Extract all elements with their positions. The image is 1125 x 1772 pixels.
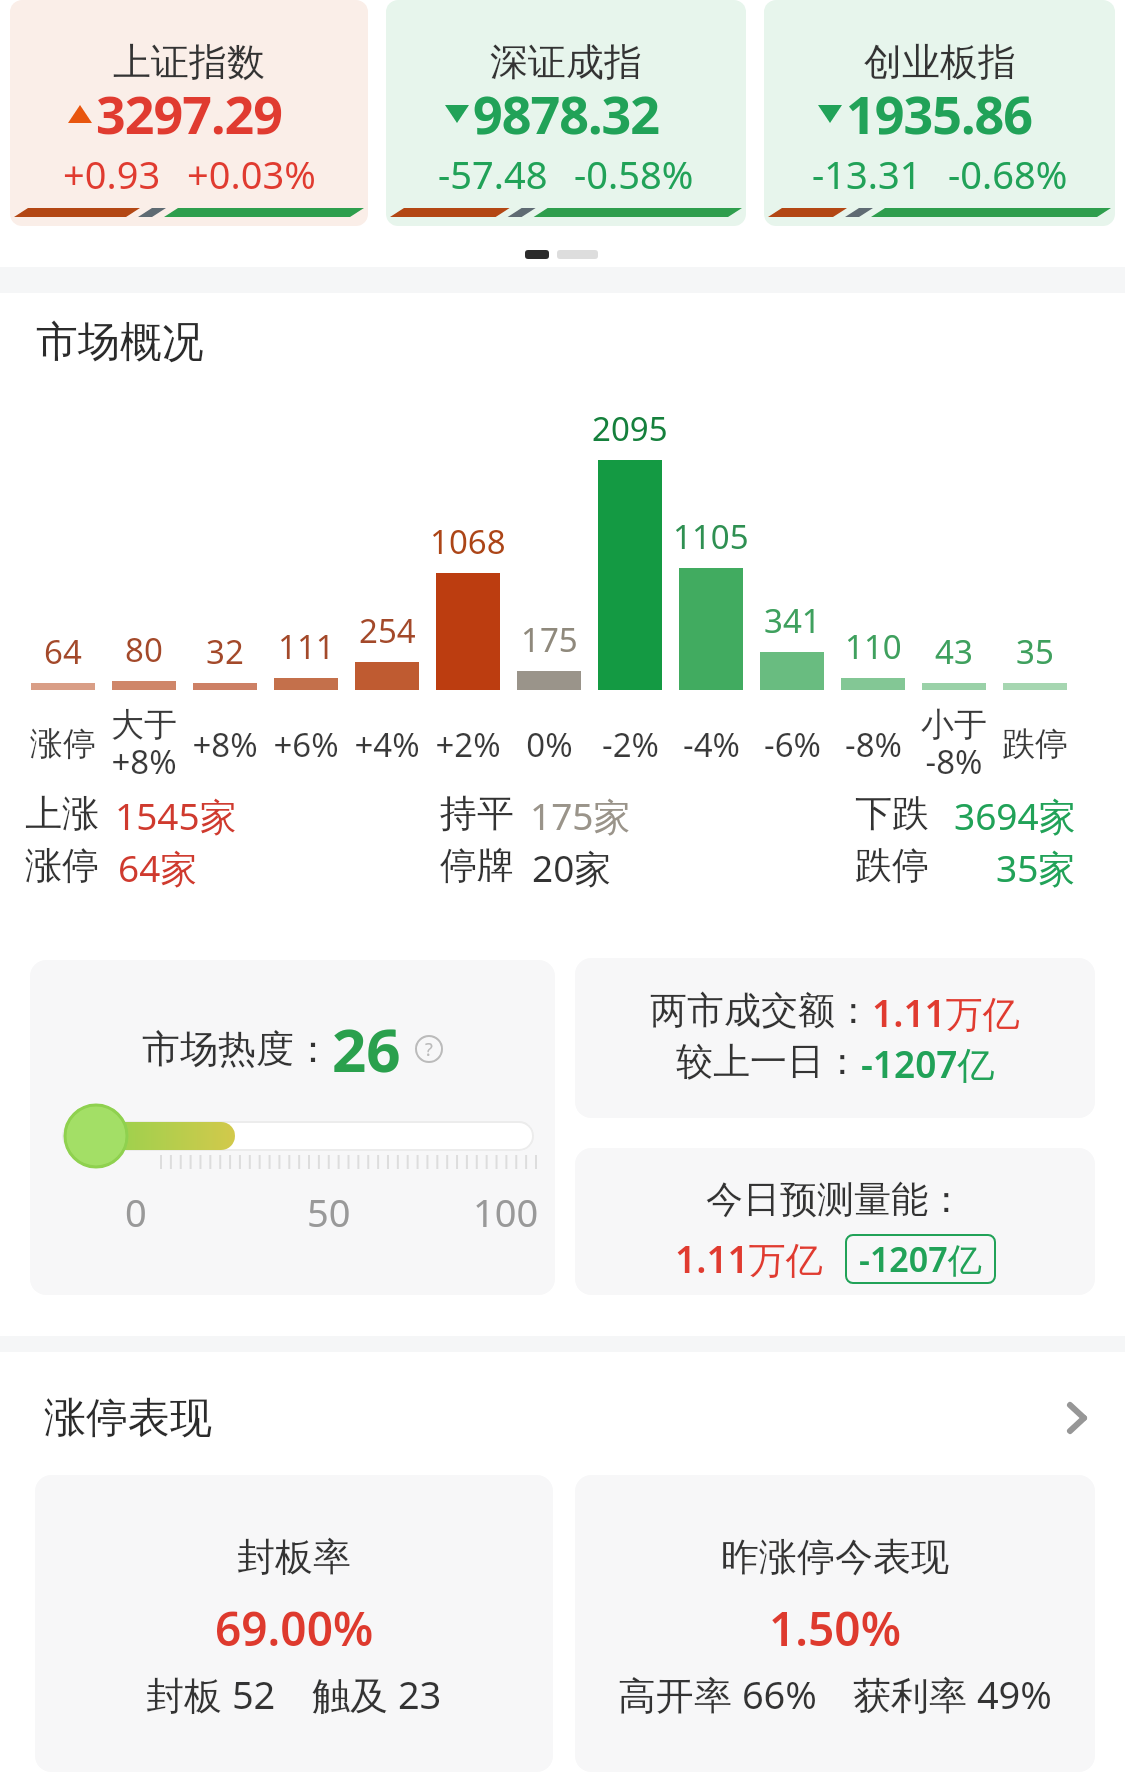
staticText: 1545家	[115, 790, 237, 841]
staticText: 触及 23	[312, 1668, 442, 1720]
staticText: -13.31	[812, 148, 922, 200]
staticText: 跌停	[1002, 723, 1068, 765]
staticText: 9878.32	[473, 78, 660, 149]
staticText: 停牌	[440, 842, 514, 889]
staticText: +0.93	[63, 148, 161, 200]
staticText: 341	[764, 598, 821, 643]
staticText: 1.11万亿	[872, 987, 1020, 1038]
staticText: 254	[359, 608, 416, 653]
staticText: 64家	[118, 842, 198, 893]
staticText: -1207亿	[861, 1038, 995, 1089]
staticText: 64	[44, 629, 82, 674]
staticText: 80	[125, 627, 163, 672]
staticText: 今日预测量能：	[706, 1176, 965, 1223]
staticText: 0%	[526, 722, 573, 767]
staticText: 涨停	[25, 842, 99, 889]
staticText: 大于 +8%	[111, 704, 177, 784]
staticText: -2%	[602, 722, 659, 767]
staticText: 1105	[673, 514, 749, 559]
staticText: -57.48	[438, 148, 548, 200]
staticText: 较上一日：	[676, 1038, 861, 1085]
staticText: 市场概况	[36, 316, 204, 369]
button[interactable]: 今日预测量能：	[575, 1148, 1095, 1295]
staticText: -6%	[764, 722, 821, 767]
staticText: -8%	[845, 722, 902, 767]
staticText: 20家	[532, 842, 612, 893]
staticText: 2095	[592, 406, 668, 451]
button[interactable]: 两市成交额：	[575, 958, 1095, 1118]
staticText: 持平	[440, 790, 514, 837]
button[interactable]: 上证指数	[10, 0, 368, 226]
staticText: 下跌	[855, 790, 929, 837]
staticText: 0	[125, 1186, 147, 1238]
staticText: +4%	[354, 722, 420, 767]
staticText: ?	[425, 1037, 433, 1062]
staticText: 26	[332, 1008, 401, 1090]
staticText: -4%	[683, 722, 740, 767]
staticText: 上涨	[25, 790, 99, 837]
staticText: +2%	[435, 722, 501, 767]
staticText: 创业板指	[864, 38, 1016, 86]
staticText: 110	[845, 624, 902, 669]
button[interactable]: 创业板指	[764, 0, 1115, 226]
staticText: +6%	[273, 722, 339, 767]
staticText: 高开率 66%	[618, 1668, 817, 1720]
staticText: -0.58%	[574, 148, 694, 200]
button[interactable]: 深证成指	[386, 0, 746, 226]
staticText: 昨涨停今表现	[721, 1533, 949, 1581]
button[interactable]: 封板率	[35, 1475, 553, 1772]
button[interactable]: 昨涨停今表现	[575, 1475, 1095, 1772]
staticText: 35家	[996, 842, 1076, 893]
staticText: 小于 -8%	[921, 704, 987, 784]
staticText: 1068	[430, 519, 506, 564]
staticText: 1.11万亿	[675, 1233, 823, 1284]
button[interactable]: 涨停表现	[0, 1388, 1125, 1448]
staticText: 上证指数	[113, 38, 265, 86]
staticText: 69.00%	[215, 1597, 374, 1660]
staticText: 获利率 49%	[853, 1668, 1052, 1720]
staticText: 涨停表现	[44, 1392, 212, 1445]
staticText: 35	[1016, 629, 1054, 674]
staticText: 175	[521, 617, 578, 662]
staticText: 50	[307, 1186, 351, 1238]
staticText: 1935.86	[846, 78, 1033, 149]
staticText: 跌停	[855, 842, 929, 889]
button[interactable]: 市场热度：	[30, 960, 555, 1295]
staticText: 111	[278, 624, 335, 669]
staticText: 3694家	[954, 790, 1076, 841]
staticText: 涨停	[30, 723, 96, 765]
staticText: -0.68%	[948, 148, 1068, 200]
staticText: 市场热度：	[142, 1025, 332, 1073]
staticText: 1.50%	[769, 1597, 901, 1660]
staticText: +8%	[192, 722, 258, 767]
staticText: 封板 52	[146, 1668, 276, 1720]
staticText: 100	[473, 1186, 539, 1238]
staticText: 封板率	[237, 1533, 351, 1581]
staticText: 32	[206, 629, 244, 674]
staticText: 175家	[530, 790, 631, 841]
staticText: +0.03%	[187, 148, 316, 200]
staticText: 深证成指	[490, 38, 642, 86]
staticText: 43	[935, 629, 973, 674]
staticText: 3297.29	[96, 78, 283, 149]
staticText: -1207亿	[859, 1236, 982, 1282]
staticText: 两市成交额：	[650, 987, 872, 1034]
